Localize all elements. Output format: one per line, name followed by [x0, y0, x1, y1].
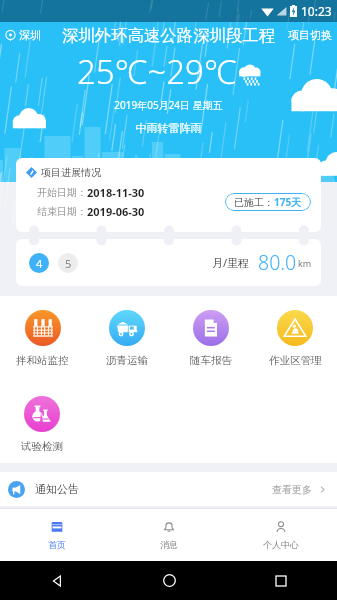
- button[interactable]: 首页: [0, 509, 113, 561]
- staticText: 80.0: [258, 249, 297, 276]
- button[interactable]: 个人中心: [225, 509, 337, 561]
- staticText: 个人中心: [263, 539, 299, 550]
- staticText: 5: [65, 256, 72, 271]
- staticText: 2019年05月24日 星期五: [0, 98, 337, 112]
- staticText: 消息: [160, 539, 178, 550]
- staticText: 深圳: [19, 28, 41, 42]
- button[interactable]: 4: [16, 239, 321, 286]
- staticText: 拌和站监控: [16, 354, 69, 367]
- other: Recent apps: [276, 576, 286, 586]
- staticText: 随车报告: [190, 354, 232, 367]
- staticText: 25℃~29℃: [77, 49, 237, 94]
- button[interactable]: 拌和站监控: [0, 310, 85, 367]
- staticText: 10:23: [301, 3, 332, 19]
- button[interactable]: 项目切换: [283, 25, 337, 45]
- button[interactable]: 深圳: [0, 25, 46, 45]
- button[interactable]: 作业区管理: [253, 310, 337, 367]
- staticText: 月/里程: [212, 255, 250, 270]
- staticText: 深圳外环高速公路深圳段工程: [62, 25, 276, 46]
- button[interactable]: 项目进展情况: [16, 158, 321, 232]
- staticText: 作业区管理: [269, 354, 322, 367]
- staticText: 2019-06-30: [87, 204, 145, 219]
- other: Home: [163, 574, 176, 587]
- button[interactable]: 随车报告: [169, 310, 253, 367]
- button[interactable]: 通知公告: [0, 472, 337, 506]
- button[interactable]: 试验检测: [0, 396, 84, 453]
- staticText: 项目切换: [288, 28, 332, 42]
- staticText: 中雨转雷阵雨: [0, 121, 337, 135]
- staticText: 通知公告: [35, 482, 79, 496]
- staticText: 查看更多: [272, 483, 312, 496]
- other: Back: [51, 575, 63, 587]
- staticText: 开始日期：: [37, 186, 87, 199]
- button[interactable]: 已施工：: [225, 193, 311, 211]
- button[interactable]: 沥青运输: [85, 310, 169, 367]
- staticText: 结束日期：: [37, 205, 87, 218]
- staticText: 2018-11-30: [87, 185, 145, 200]
- staticText: 175天: [274, 195, 302, 209]
- staticText: 首页: [48, 539, 66, 550]
- staticText: 已施工：: [234, 196, 274, 209]
- staticText: 4: [36, 256, 43, 271]
- staticText: km: [298, 257, 312, 269]
- button[interactable]: 消息: [113, 509, 225, 561]
- staticText: 试验检测: [21, 440, 63, 453]
- staticText: 沥青运输: [106, 354, 148, 367]
- staticText: 项目进展情况: [41, 166, 101, 179]
